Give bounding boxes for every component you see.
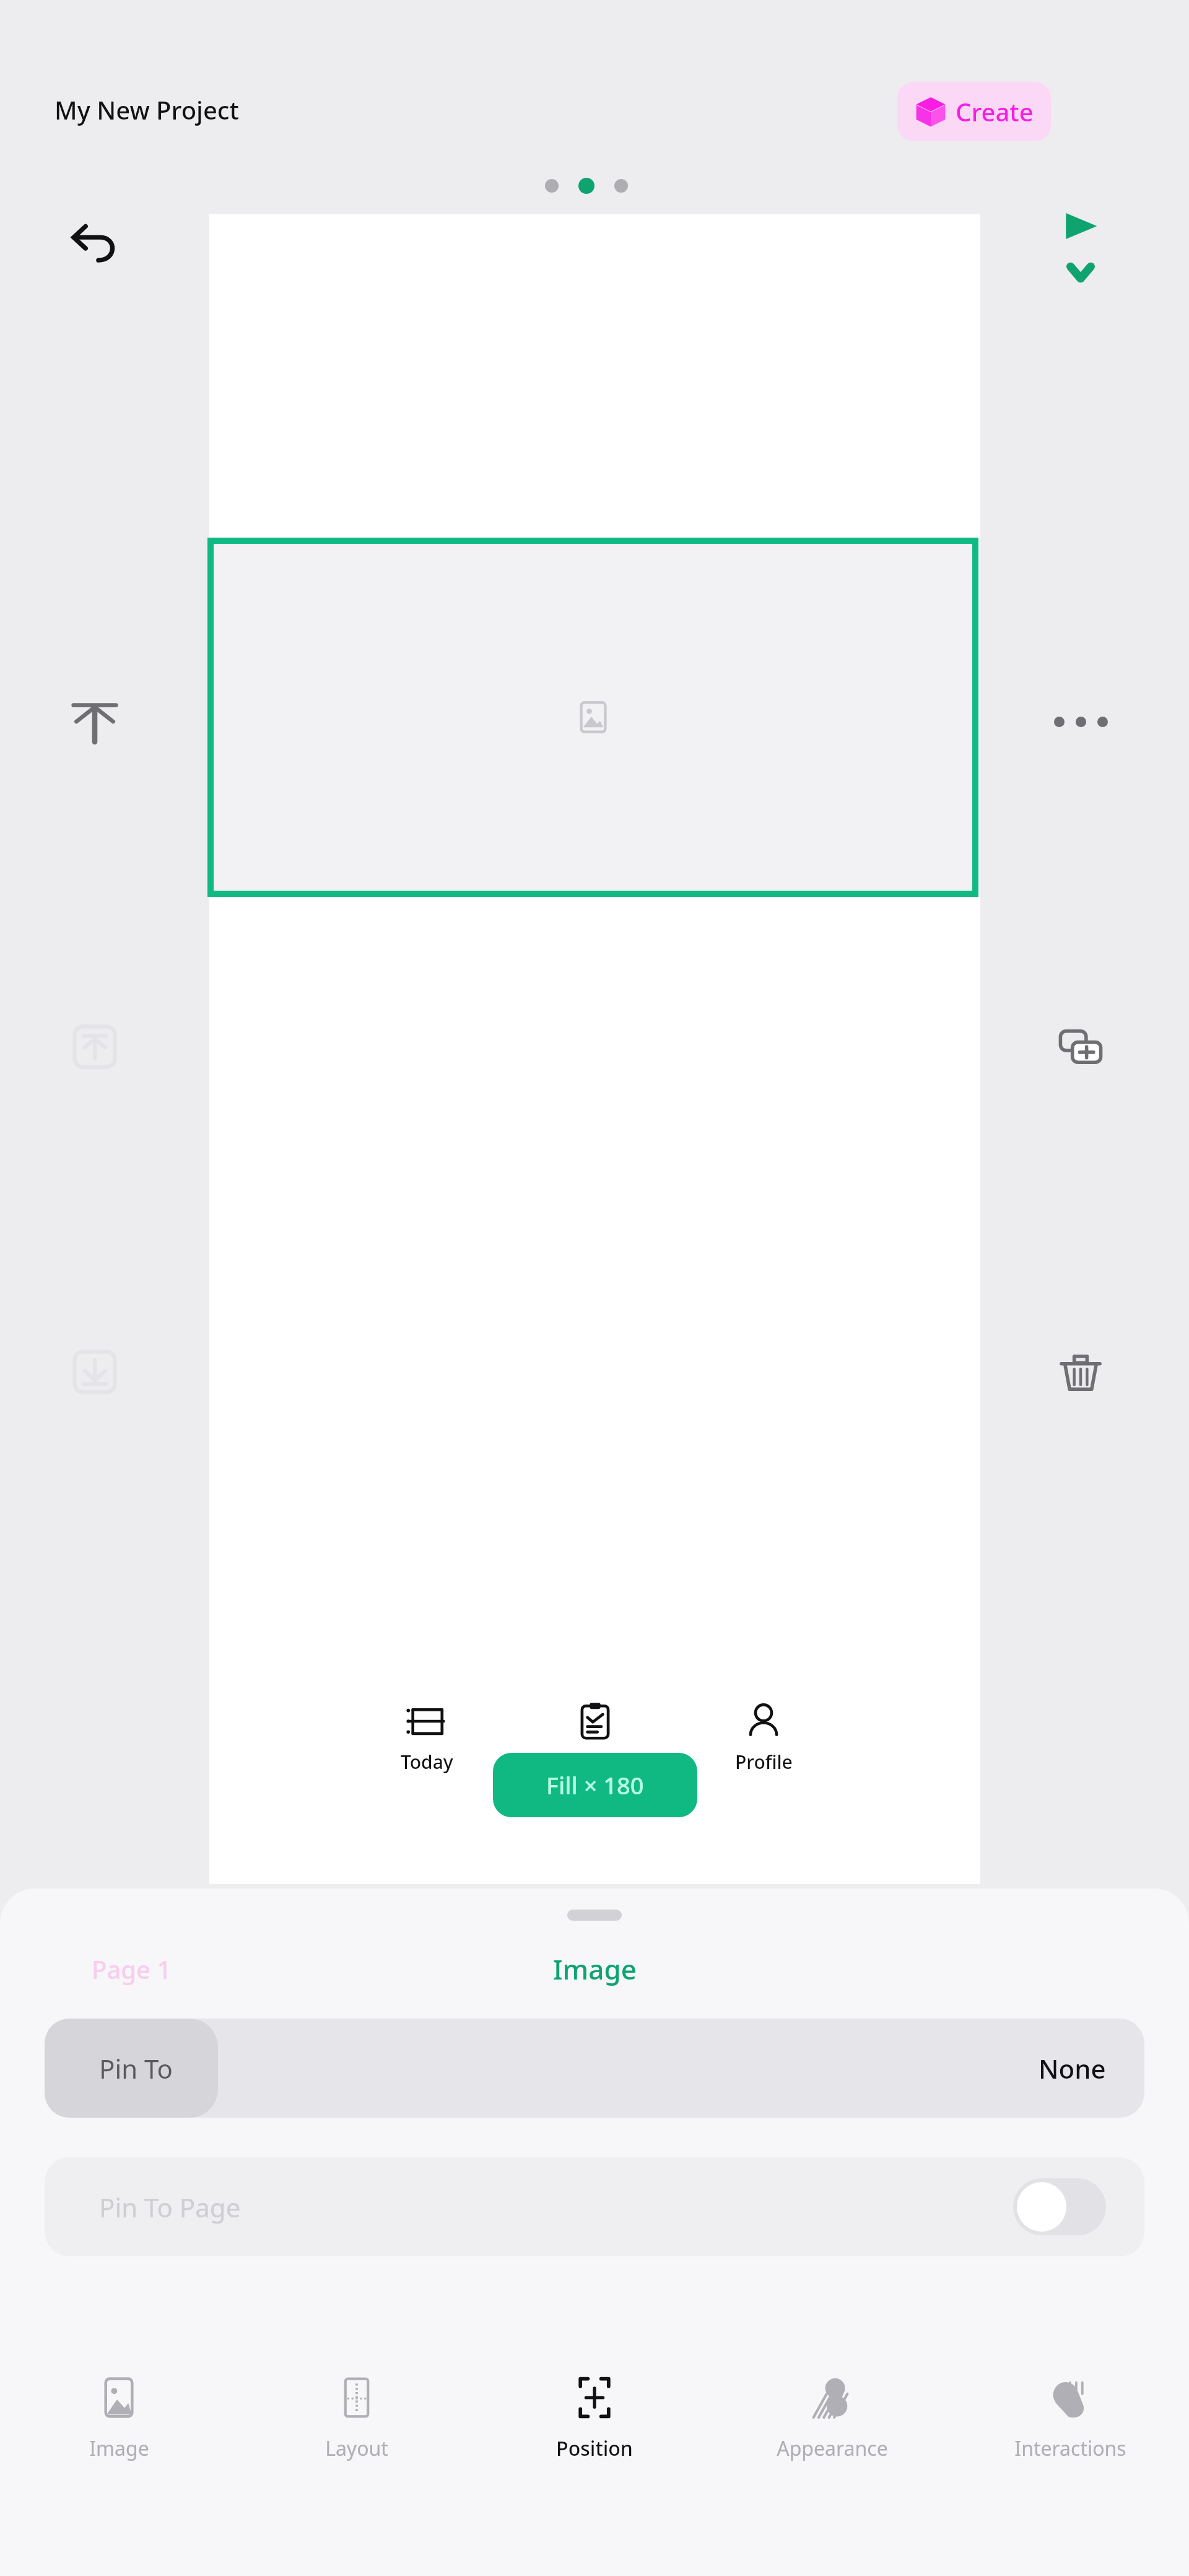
button[interactable]: Appearance xyxy=(713,2353,951,2576)
button[interactable]: Pin To xyxy=(45,2019,1144,2118)
button[interactable]: Duplicate xyxy=(1047,1013,1115,1081)
staticText: Pin To Page xyxy=(99,2190,241,2225)
staticText: Appearance xyxy=(777,2435,888,2462)
staticText: Interactions xyxy=(1014,2435,1126,2462)
button[interactable]: Position xyxy=(476,2353,713,2576)
button[interactable]: Move down xyxy=(61,1338,129,1406)
staticText: Pin To xyxy=(99,2051,173,2086)
button[interactable]: Delete xyxy=(1047,1338,1115,1406)
button[interactable]: Notifications xyxy=(842,541,915,614)
button[interactable]: Fill × 180 xyxy=(493,1753,697,1817)
button[interactable]: Undo xyxy=(61,211,129,279)
button[interactable] xyxy=(207,538,978,897)
button[interactable]: Profile xyxy=(695,1702,832,1775)
button[interactable]: Interactions xyxy=(951,2353,1189,2576)
staticText: Image xyxy=(89,2435,149,2462)
button[interactable]: Image xyxy=(0,2353,238,2576)
staticText: Fill × 180 xyxy=(546,1769,644,1801)
staticText: My New Project xyxy=(54,93,239,126)
button[interactable]: Insight xyxy=(527,1702,663,1775)
button[interactable]: More options xyxy=(1047,688,1115,756)
staticText: Insight xyxy=(564,1749,627,1775)
button[interactable]: Align top xyxy=(61,688,129,756)
staticText: Position xyxy=(556,2435,633,2462)
staticText: None xyxy=(1039,2051,1106,2086)
staticText: Create xyxy=(956,95,1034,128)
button[interactable]: Create xyxy=(897,82,1051,141)
button[interactable]: Pin To Page xyxy=(45,2157,1144,2256)
staticText: Layout xyxy=(325,2435,388,2462)
button[interactable]: Layout xyxy=(238,2353,476,2576)
button[interactable]: Move up xyxy=(61,1013,129,1081)
staticText: Today xyxy=(401,1749,453,1775)
button[interactable]: Today xyxy=(359,1702,495,1775)
button[interactable]: Page 1 xyxy=(92,1952,172,1986)
staticText: Profile xyxy=(735,1749,793,1775)
staticText: Image xyxy=(553,1950,637,1988)
button[interactable]: Preview xyxy=(1047,206,1115,287)
